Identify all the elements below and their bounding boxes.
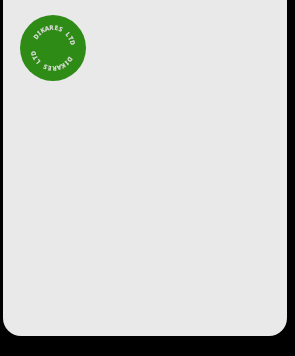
button[interactable]: Dikares Ltd logo [20,15,86,81]
